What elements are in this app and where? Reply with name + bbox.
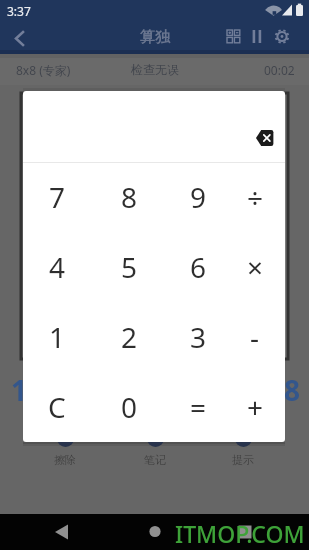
- button[interactable]: ÷: [223, 162, 285, 232]
- staticText: ×: [247, 248, 264, 286]
- staticText: 3:37: [7, 3, 31, 19]
- button[interactable]: 8: [97, 162, 161, 232]
- button[interactable]: [4, 24, 40, 54]
- staticText: 8: [121, 178, 138, 216]
- staticText: 7: [49, 178, 66, 216]
- button[interactable]: 2: [97, 302, 161, 372]
- staticText: 2: [121, 318, 138, 356]
- button[interactable]: 笔记: [125, 430, 185, 470]
- staticText: ÷: [247, 178, 264, 216]
- button[interactable]: 9: [166, 162, 230, 232]
- button[interactable]: 擦除: [35, 430, 95, 470]
- button[interactable]: [231, 522, 259, 544]
- staticText: 提示: [232, 453, 254, 467]
- button[interactable]: [247, 120, 283, 156]
- staticText: 6: [190, 248, 207, 286]
- staticText: 3: [190, 318, 207, 356]
- button[interactable]: =: [166, 372, 230, 442]
- button[interactable]: [141, 522, 169, 544]
- button[interactable]: 6: [166, 232, 230, 302]
- staticText: 9: [190, 178, 207, 216]
- button[interactable]: 4: [25, 232, 89, 302]
- staticText: 00:02: [264, 62, 295, 78]
- staticText: 5: [121, 248, 138, 286]
- staticText: =: [190, 388, 207, 426]
- button[interactable]: 0: [97, 372, 161, 442]
- staticText: -: [250, 318, 260, 356]
- button[interactable]: 1: [25, 302, 89, 372]
- button[interactable]: 3: [166, 302, 230, 372]
- staticText: 4: [49, 248, 66, 286]
- button[interactable]: [48, 522, 76, 544]
- staticText: +: [247, 388, 264, 426]
- button[interactable]: -: [223, 302, 285, 372]
- staticText: ITMOP.COM: [175, 518, 305, 549]
- staticText: 擦除: [54, 453, 76, 467]
- button[interactable]: [270, 26, 296, 52]
- staticText: C: [48, 388, 66, 426]
- button[interactable]: 5: [97, 232, 161, 302]
- staticText: 0: [121, 388, 138, 426]
- button[interactable]: [222, 26, 248, 52]
- button[interactable]: [246, 26, 268, 52]
- button[interactable]: C: [25, 372, 89, 442]
- staticText: 8x8 (专家): [16, 62, 71, 78]
- button[interactable]: 提示: [213, 430, 273, 470]
- staticText: 算独: [140, 28, 170, 47]
- staticText: 1: [11, 371, 28, 409]
- staticText: 8: [284, 371, 301, 409]
- staticText: 1: [49, 318, 66, 356]
- staticText: 检查无误: [131, 62, 179, 77]
- button[interactable]: ×: [223, 232, 285, 302]
- button[interactable]: +: [223, 372, 285, 442]
- button[interactable]: 7: [25, 162, 89, 232]
- staticText: 笔记: [144, 453, 166, 467]
